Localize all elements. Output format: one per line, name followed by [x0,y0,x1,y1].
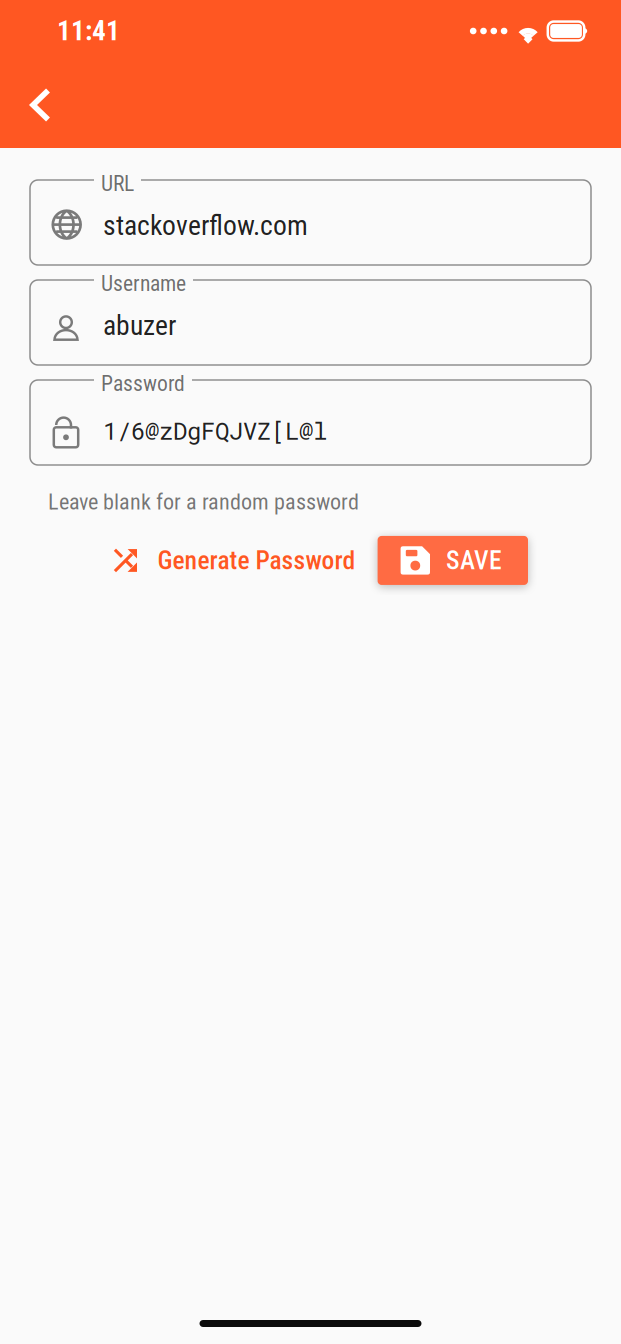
staticText: URL [101,171,134,196]
staticText: 11:41 [57,15,120,47]
staticText: abuzer [103,309,176,342]
button[interactable]: Generate Password [102,536,368,585]
button[interactable]: Back [14,73,67,136]
staticText: Password [101,371,185,396]
staticText: Username [101,271,186,296]
staticText: SAVE [446,545,502,575]
button[interactable]: SAVE [378,536,528,585]
staticText: 1/6@zDgFQJVZ[L@l [103,415,327,446]
staticText: Leave blank for a random password [48,489,359,515]
staticText: Generate Password [158,545,356,575]
staticText: stackoverflow.com [103,209,308,242]
